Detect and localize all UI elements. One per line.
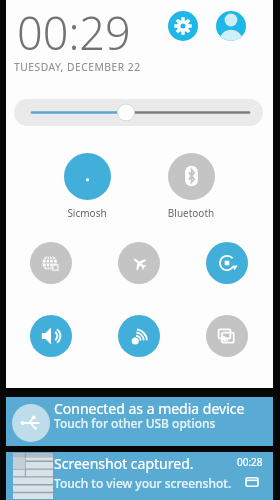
button[interactable]: Brightness: [14, 99, 263, 126]
staticText: Touch to view your screenshot.: [54, 475, 232, 491]
staticText: TUESDAY, DECEMBER 22: [14, 60, 141, 74]
staticText: Bluetooth: [145, 206, 237, 220]
button[interactable]: Hotspot: [118, 315, 160, 357]
button[interactable]: Sound: [30, 315, 72, 357]
button[interactable]: Connected as a media device: [6, 397, 273, 446]
button[interactable]: Settings: [168, 11, 198, 41]
button[interactable]: Airplane mode: [118, 242, 160, 284]
staticText: Connected as a media device: [54, 399, 245, 418]
staticText: Touch for other USB options: [54, 415, 216, 431]
staticText: Sicmosh: [41, 206, 133, 220]
button[interactable]: Screenshot captured.: [6, 452, 273, 500]
staticText: 00:29: [17, 2, 131, 63]
button[interactable]: Sicmosh: [41, 153, 133, 220]
button[interactable]: User profile: [216, 11, 246, 41]
staticText: 00:28: [237, 455, 263, 469]
button[interactable]: Bluetooth: [145, 153, 237, 220]
button[interactable]: Mobile data: [30, 242, 72, 284]
staticText: Screenshot captured.: [54, 454, 194, 473]
button[interactable]: Auto rotate: [206, 242, 248, 284]
button[interactable]: Cast screen: [206, 315, 248, 357]
